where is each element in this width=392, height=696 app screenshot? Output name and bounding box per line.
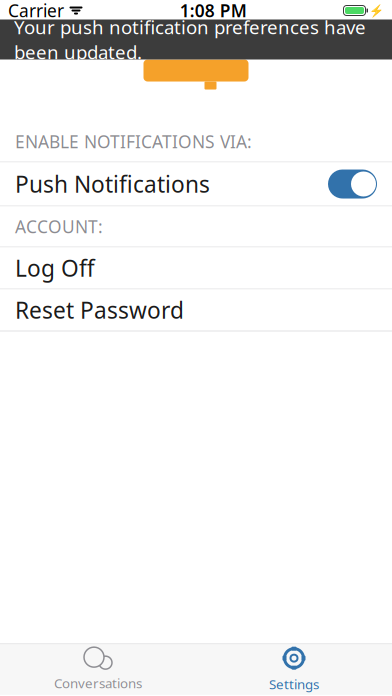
staticText: Reset Password bbox=[15, 295, 184, 325]
staticText: ACCOUNT: bbox=[15, 215, 103, 238]
staticText: ⚡ bbox=[369, 4, 384, 17]
staticText: Settings bbox=[269, 675, 319, 693]
staticText bbox=[64, 0, 69, 22]
staticText: Conversations bbox=[54, 674, 142, 692]
button[interactable]: Reset Password bbox=[0, 289, 392, 330]
button[interactable]: Settings bbox=[196, 644, 392, 694]
staticText: Push Notifications bbox=[15, 169, 210, 199]
button[interactable]: Conversations bbox=[0, 644, 196, 694]
staticText: Your push notification preferences have … bbox=[14, 15, 366, 64]
staticText: ENABLE NOTIFICATIONS VIA: bbox=[15, 130, 252, 153]
staticText: Carrier bbox=[8, 0, 64, 22]
staticText: 1:08 PM bbox=[180, 0, 247, 22]
button[interactable]: Push Notifications bbox=[0, 162, 392, 205]
button[interactable]: Log Off bbox=[0, 247, 392, 288]
staticText: Log Off bbox=[15, 253, 95, 283]
